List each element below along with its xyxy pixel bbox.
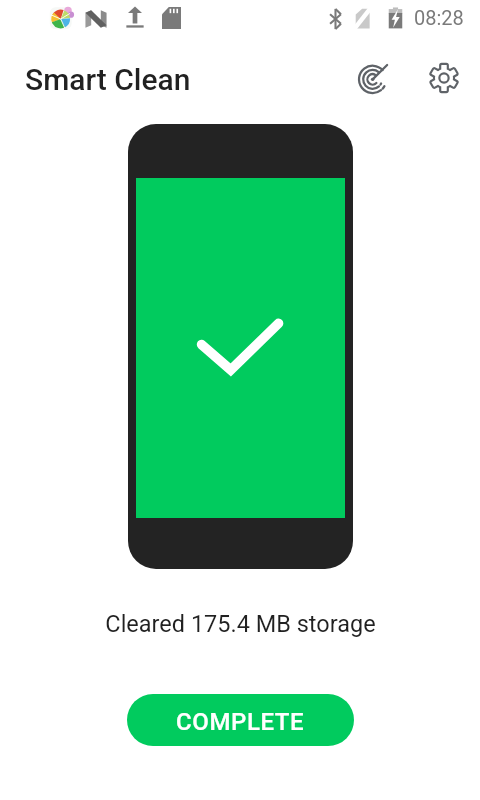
staticText: Smart Clean <box>25 62 191 97</box>
staticText: 08:28 <box>414 6 464 29</box>
button[interactable]: COMPLETE <box>127 694 354 746</box>
button[interactable]: Settings <box>420 54 468 102</box>
button[interactable]: Scan <box>349 54 397 102</box>
staticText: COMPLETE <box>176 708 305 736</box>
staticText: Cleared 175.4 MB storage <box>105 610 376 638</box>
